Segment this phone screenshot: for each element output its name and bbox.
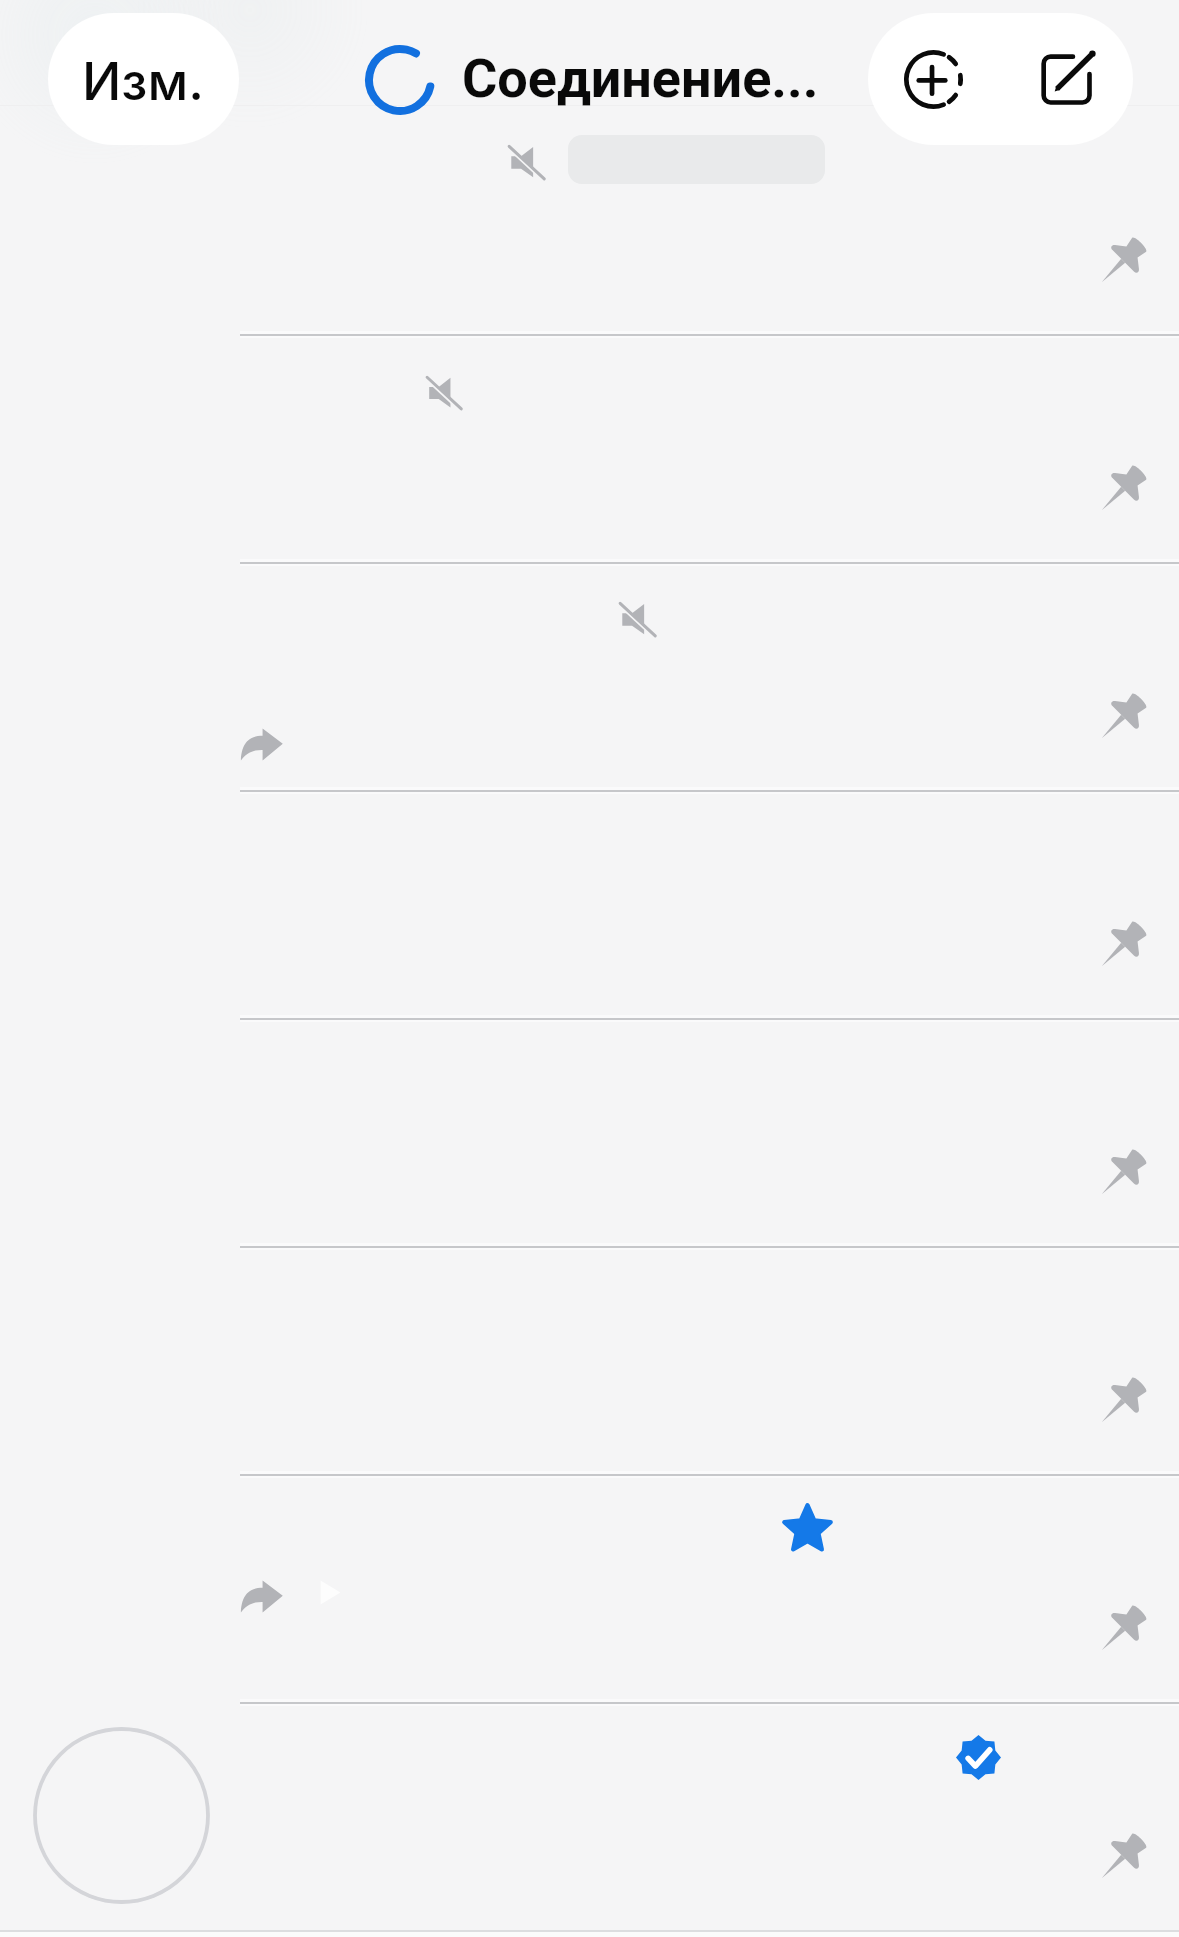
button[interactable] [0,791,1179,1019]
other: Muted [425,374,463,412]
staticText: Изм. [82,50,205,113]
other: Pinned [1099,695,1144,740]
other: Pinned [1099,467,1144,512]
other: Premium [784,1504,831,1551]
button[interactable] [0,563,1179,791]
button[interactable]: Изм. [48,13,239,145]
button[interactable] [0,1019,1179,1247]
other: Muted [507,143,546,182]
button[interactable] [0,1247,1179,1475]
button[interactable]: Add story [868,13,998,145]
other: Pinned [1099,923,1144,968]
button[interactable] [0,1703,1179,1931]
other: Pinned [1099,1835,1144,1880]
other: Pinned [1099,1379,1144,1424]
button[interactable]: New message [998,13,1133,145]
button[interactable] [0,107,1179,335]
other: Pinned [1099,239,1144,284]
other: Muted [618,600,657,639]
button[interactable] [0,1475,1179,1703]
other: Play [320,1580,341,1605]
staticText: Соединение... [462,47,819,110]
other: Forwarded [240,728,283,761]
other: Pinned [1099,1607,1144,1652]
other: Pinned [1099,1151,1144,1196]
other: Verified [956,1735,1001,1780]
other: Forwarded [240,1580,283,1613]
button[interactable] [0,335,1179,563]
